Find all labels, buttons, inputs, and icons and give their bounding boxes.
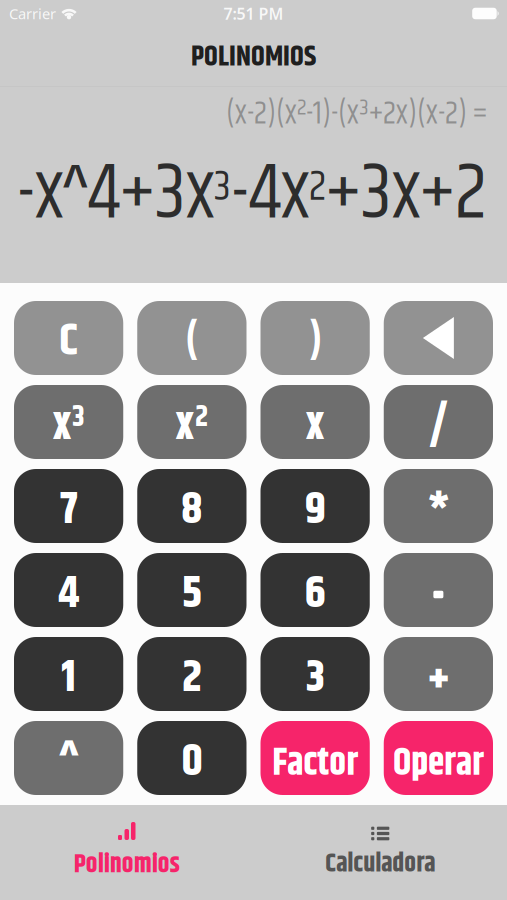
staticText: POLINOMIOS: [191, 36, 316, 79]
staticText: 6: [305, 559, 326, 629]
staticText: 9: [305, 475, 326, 545]
button[interactable]: Calculadora: [253, 823, 507, 884]
button[interactable]: Polinomios: [0, 822, 253, 885]
staticText: 3: [306, 643, 325, 713]
button[interactable]: C: [14, 301, 123, 375]
button[interactable]: +: [384, 637, 493, 711]
staticText: ^: [59, 727, 78, 795]
staticText: 7:51 PM: [223, 3, 283, 24]
staticText: 2: [309, 155, 326, 220]
button[interactable]: ^: [14, 721, 123, 795]
button[interactable]: [384, 301, 493, 375]
button[interactable]: 2: [137, 637, 246, 711]
staticText: Carrier: [9, 4, 56, 23]
staticText: -4x: [231, 135, 309, 255]
button[interactable]: *: [384, 469, 493, 543]
button[interactable]: 7: [14, 469, 123, 543]
staticText: 0: [181, 727, 202, 797]
staticText: C: [59, 307, 78, 376]
staticText: /: [428, 391, 449, 461]
staticText: (: [185, 311, 199, 372]
button[interactable]: x³: [14, 385, 123, 459]
staticText: Factor: [272, 735, 358, 793]
button[interactable]: x: [260, 385, 370, 459]
button[interactable]: [384, 553, 493, 627]
button[interactable]: 6: [260, 553, 370, 627]
staticText: -x^4+3x: [17, 135, 214, 255]
staticText: 1: [61, 643, 76, 713]
staticText: x²: [175, 391, 208, 461]
staticText: x: [306, 391, 325, 461]
staticText: +3x+2: [326, 135, 487, 255]
staticText: 3: [214, 155, 231, 220]
button[interactable]: 8: [137, 469, 246, 543]
staticText: +: [427, 647, 449, 715]
button[interactable]: 3: [260, 637, 370, 711]
button[interactable]: 0: [137, 721, 246, 795]
staticText: Polinomios: [74, 845, 180, 885]
staticText: 7: [60, 475, 77, 545]
staticText: ): [308, 311, 322, 372]
staticText: Calculadora: [325, 844, 435, 884]
button[interactable]: Factor: [260, 721, 370, 795]
staticText: *: [428, 482, 449, 541]
staticText: 4: [58, 559, 79, 629]
button[interactable]: 9: [260, 469, 370, 543]
button[interactable]: 5: [137, 553, 246, 627]
staticText: Operar: [393, 735, 484, 793]
button[interactable]: ): [260, 301, 370, 375]
staticText: (x-2)(x²-1)-(x³+2x)(x-2) =: [226, 90, 487, 139]
button[interactable]: Operar: [384, 721, 493, 795]
button[interactable]: x²: [137, 385, 246, 459]
button[interactable]: /: [384, 385, 493, 459]
staticText: 5: [182, 559, 202, 629]
button[interactable]: 4: [14, 553, 123, 627]
staticText: 2: [182, 643, 202, 713]
button[interactable]: 1: [14, 637, 123, 711]
staticText: x³: [53, 391, 85, 461]
staticText: 8: [181, 475, 203, 545]
button[interactable]: (: [137, 301, 246, 375]
